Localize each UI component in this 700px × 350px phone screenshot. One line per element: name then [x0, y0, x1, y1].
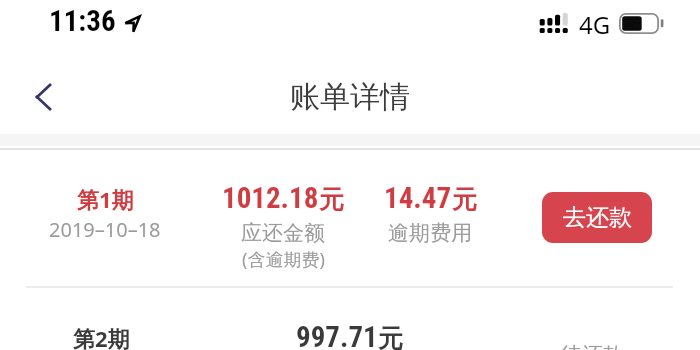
staticText: (含逾期费): [242, 247, 325, 272]
staticText: 账单详情: [290, 78, 410, 116]
staticText: 997.71: [296, 320, 378, 350]
staticText: 逾期费用: [388, 220, 472, 246]
staticText: 待还款: [561, 342, 624, 350]
staticText: 应还金额: [241, 220, 325, 246]
staticText: 1012.18: [222, 181, 319, 215]
staticText: 元: [452, 184, 477, 215]
button[interactable]: 去还款: [542, 192, 652, 243]
staticText: 2019–10–18: [49, 216, 161, 243]
button[interactable]: 第2期: [0, 288, 700, 350]
button[interactable]: Back: [16, 70, 68, 122]
staticText: 去还款: [563, 203, 632, 232]
staticText: 14.47: [384, 181, 452, 215]
staticText: 4G: [579, 8, 611, 41]
staticText: 11:36: [49, 4, 116, 38]
button[interactable]: 第1期: [0, 149, 700, 286]
staticText: 第2期: [73, 323, 130, 350]
staticText: 元: [319, 184, 344, 215]
staticText: 元: [378, 323, 403, 350]
staticText: 第1期: [77, 184, 134, 214]
